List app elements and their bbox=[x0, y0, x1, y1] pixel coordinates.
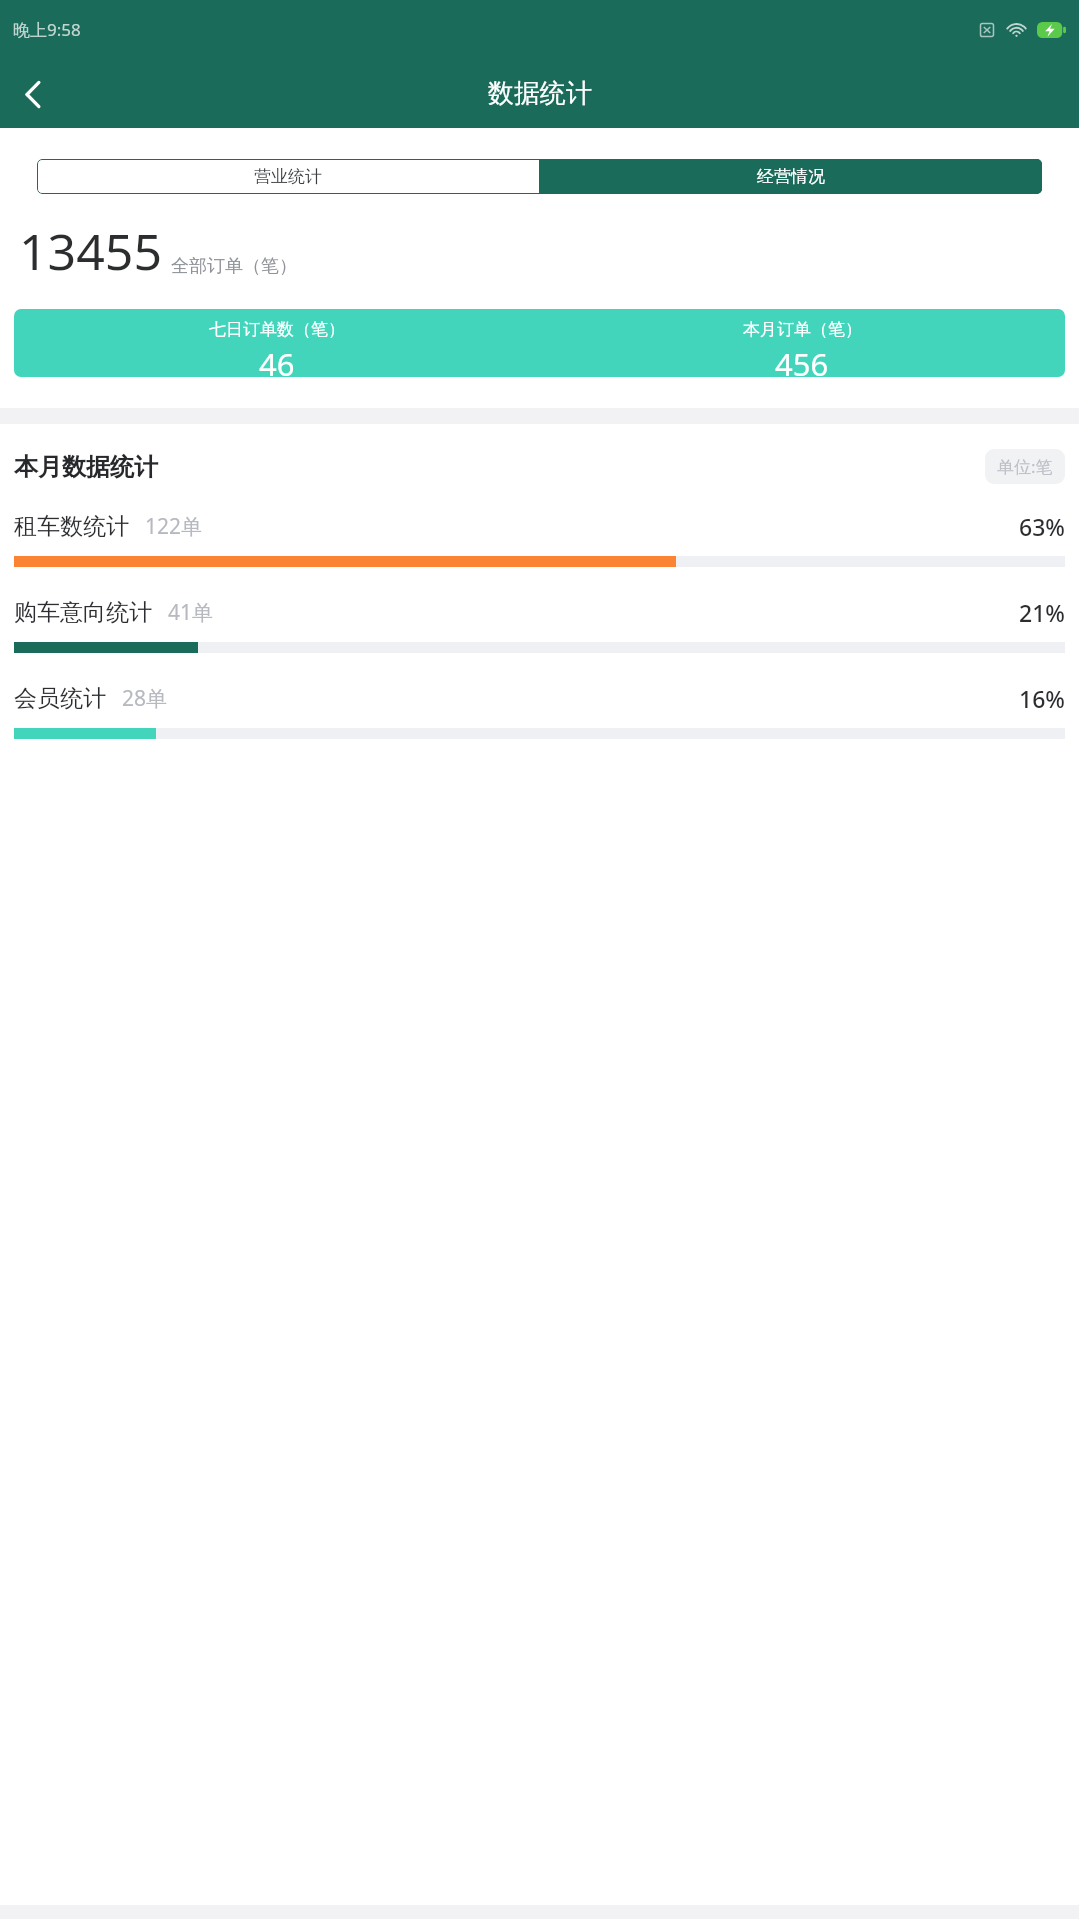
button[interactable]: 租车数统计 bbox=[14, 511, 1065, 567]
button[interactable]: 购车意向统计 bbox=[14, 597, 1065, 653]
staticText: 本月数据统计 bbox=[14, 452, 158, 482]
staticText: 经营情况 bbox=[757, 166, 825, 187]
staticText: 41单 bbox=[168, 598, 214, 627]
staticText: 46 bbox=[259, 343, 295, 377]
button[interactable]: Back bbox=[0, 61, 66, 127]
staticText: 21% bbox=[1019, 597, 1065, 628]
staticText: 28单 bbox=[122, 684, 168, 713]
staticText: 会员统计 bbox=[14, 684, 106, 713]
staticText: 租车数统计 bbox=[14, 512, 129, 541]
staticText: 122单 bbox=[145, 512, 203, 541]
button[interactable]: 会员统计 bbox=[14, 683, 1065, 739]
staticText: 16% bbox=[1019, 683, 1065, 714]
staticText: 营业统计 bbox=[254, 166, 322, 187]
staticText: 七日订单数（笔） bbox=[209, 319, 345, 340]
button[interactable]: 营业统计 bbox=[37, 159, 539, 194]
button[interactable]: 经营情况 bbox=[539, 159, 1042, 194]
staticText: 本月订单（笔） bbox=[743, 319, 862, 340]
staticText: 数据统计 bbox=[488, 77, 592, 110]
staticText: 晚上9:58 bbox=[13, 18, 81, 41]
staticText: 63% bbox=[1019, 511, 1065, 542]
staticText: 13455 bbox=[19, 217, 162, 285]
staticText: 单位:笔 bbox=[997, 455, 1053, 478]
staticText: 456 bbox=[775, 343, 829, 377]
staticText: 全部订单（笔） bbox=[171, 255, 297, 278]
button[interactable]: 单位:笔 bbox=[985, 449, 1065, 484]
staticText: 购车意向统计 bbox=[14, 598, 152, 627]
